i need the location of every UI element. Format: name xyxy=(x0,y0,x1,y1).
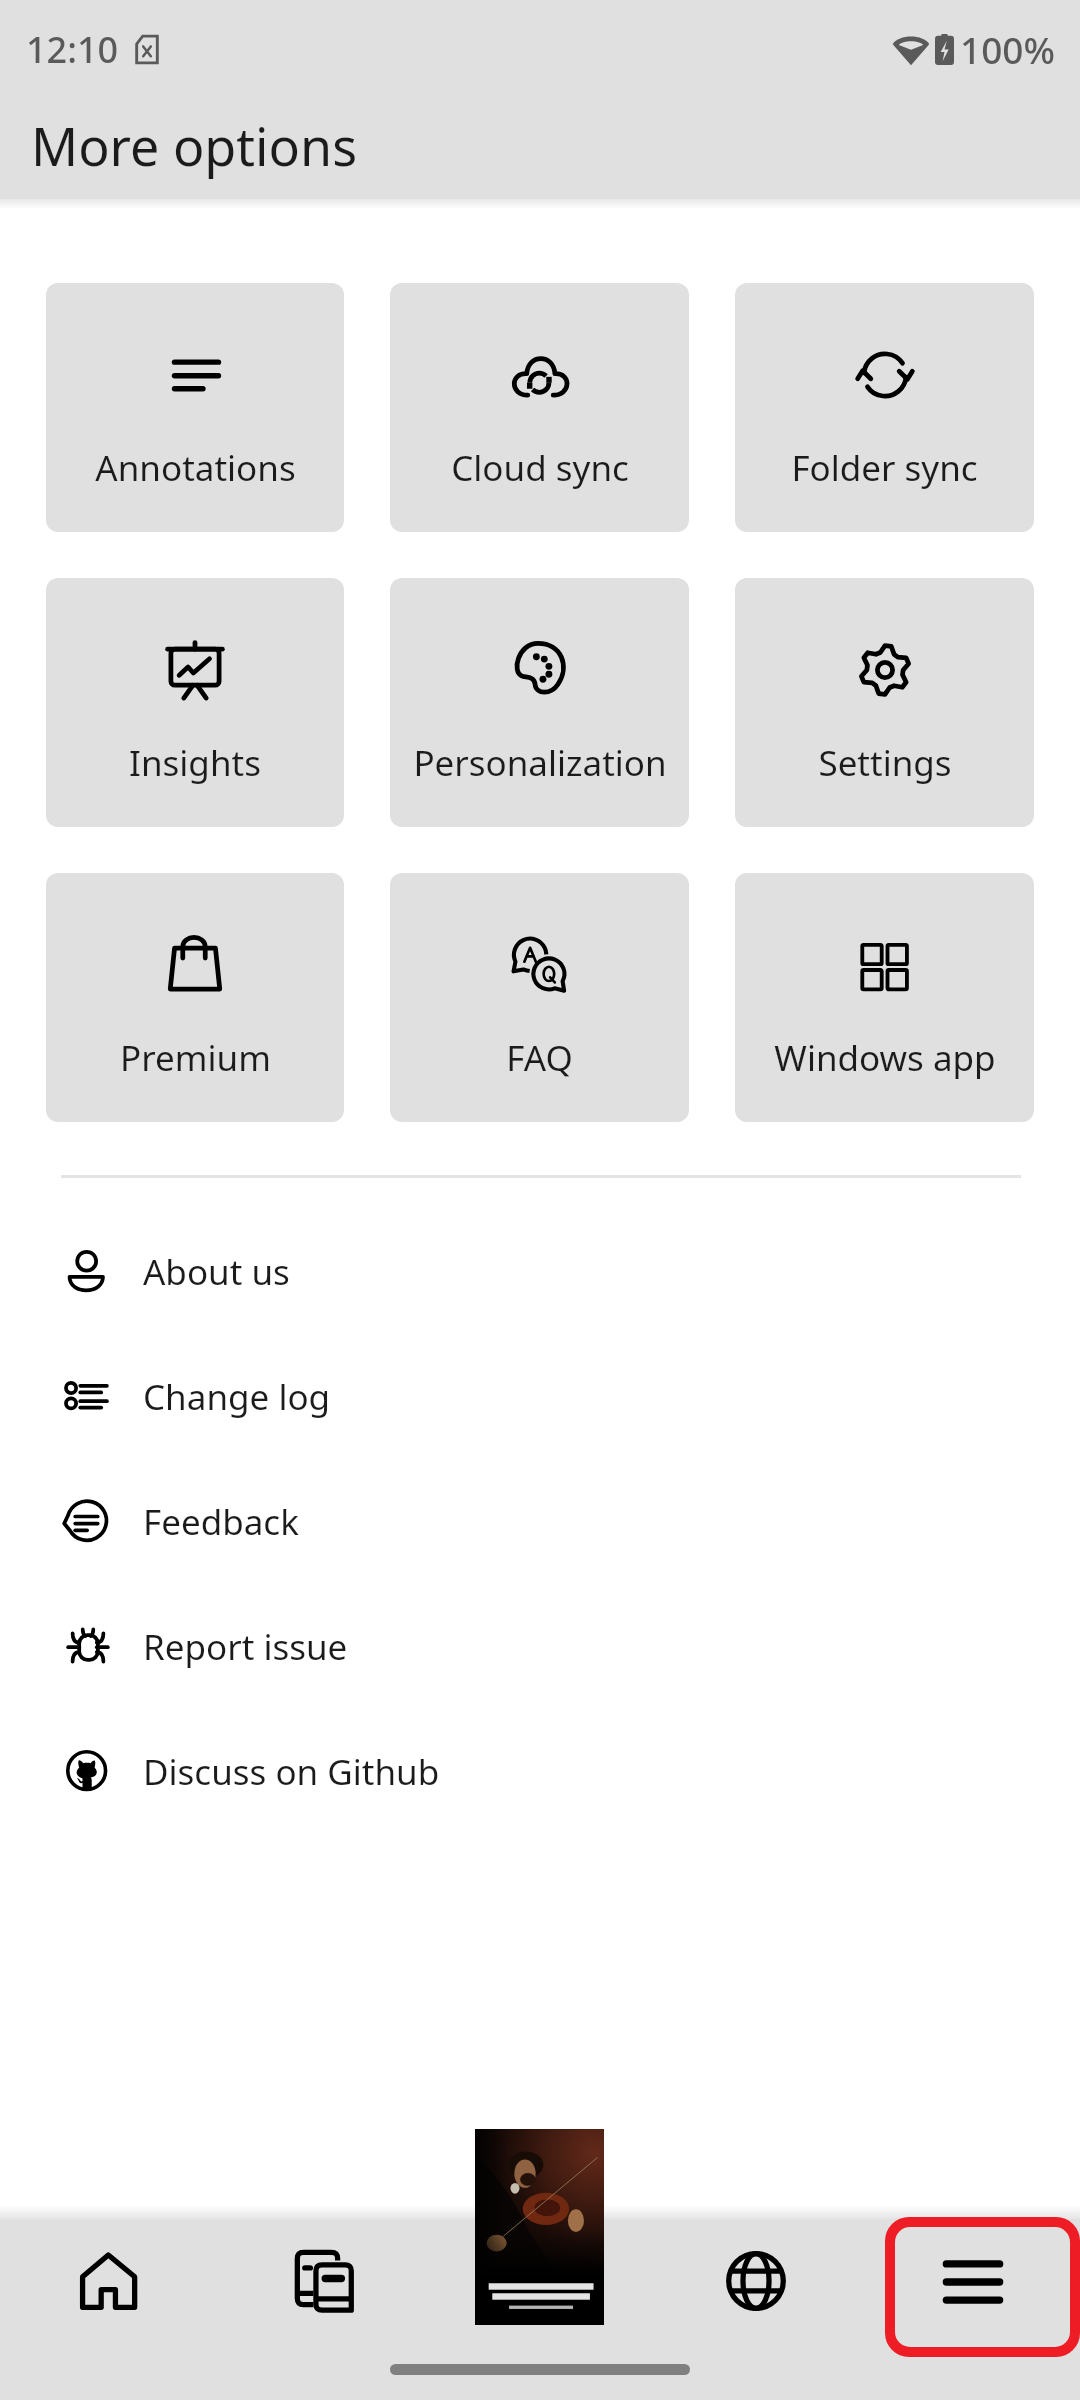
button[interactable]: More options xyxy=(895,2227,1070,2347)
button[interactable]: Library xyxy=(216,2219,432,2343)
staticText: About us xyxy=(143,1248,290,1296)
button[interactable]: FAQ xyxy=(390,873,689,1122)
button[interactable]: Current book xyxy=(475,2129,604,2325)
staticText: Windows app xyxy=(774,1034,996,1082)
button[interactable]: Insights xyxy=(46,578,344,827)
staticText: FAQ xyxy=(506,1034,573,1082)
staticText: Feedback xyxy=(143,1498,299,1546)
staticText: Settings xyxy=(818,739,952,787)
button[interactable]: Premium xyxy=(46,873,344,1122)
button[interactable]: Folder sync xyxy=(735,283,1034,532)
staticText: 100% xyxy=(960,24,1056,74)
staticText: Change log xyxy=(143,1373,331,1421)
staticText: 12:10 xyxy=(26,25,119,74)
button[interactable]: About us xyxy=(0,1209,1080,1334)
button[interactable]: Settings xyxy=(735,578,1034,827)
button[interactable]: Feedback xyxy=(0,1459,1080,1584)
button[interactable]: Report issue xyxy=(0,1584,1080,1709)
staticText: Cloud sync xyxy=(451,444,629,492)
button[interactable]: Home xyxy=(0,2219,216,2343)
button[interactable]: Change log xyxy=(0,1334,1080,1459)
staticText: More options xyxy=(31,110,358,181)
button[interactable]: Annotations xyxy=(46,283,344,532)
staticText: Discuss on Github xyxy=(143,1748,440,1796)
button[interactable]: Windows app xyxy=(735,873,1034,1122)
staticText: Premium xyxy=(120,1034,271,1082)
button[interactable]: Personalization xyxy=(390,578,689,827)
button[interactable]: Discuss on Github xyxy=(0,1709,1080,1834)
staticText: Insights xyxy=(129,739,261,787)
staticText: Folder sync xyxy=(791,444,978,492)
staticText: Personalization xyxy=(413,739,667,787)
button[interactable]: Browse xyxy=(648,2219,864,2343)
staticText: Report issue xyxy=(143,1623,348,1671)
staticText: Annotations xyxy=(95,444,296,492)
button[interactable]: Cloud sync xyxy=(390,283,689,532)
